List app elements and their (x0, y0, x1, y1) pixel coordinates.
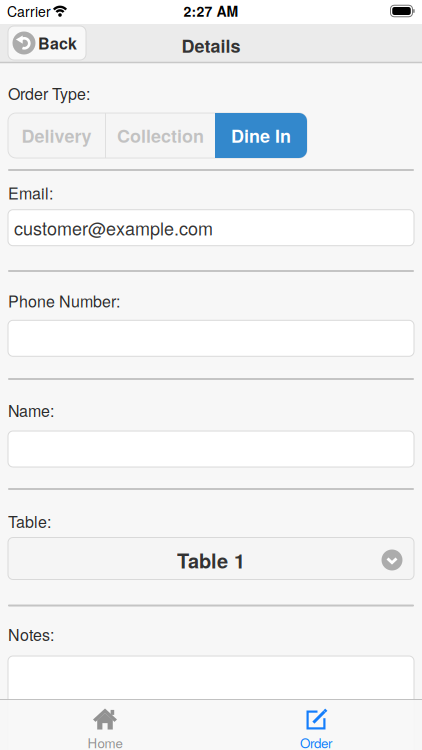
staticText: Delivery (21, 123, 91, 148)
staticText: 2:27 AM (183, 1, 238, 21)
button[interactable]: Home (55, 700, 155, 750)
staticText: Email: (8, 181, 53, 204)
staticText: Dine In (231, 123, 291, 148)
staticText: Details (181, 33, 240, 58)
staticText: Home (87, 733, 122, 750)
staticText: customer@example.com (14, 215, 213, 241)
button[interactable]: Delivery (8, 113, 105, 158)
staticText: Carrier (7, 1, 51, 21)
button[interactable]: Table 1 (8, 537, 414, 579)
staticText: Order Type: (8, 81, 90, 104)
staticText: Collection (117, 123, 204, 148)
button[interactable]: Collection (105, 113, 215, 158)
button[interactable]: Dine In (215, 113, 307, 158)
staticText: Back (38, 31, 77, 54)
staticText: Notes: (8, 622, 54, 645)
staticText: Name: (8, 398, 54, 421)
staticText: Table: (8, 509, 51, 532)
button[interactable]: Order (266, 700, 366, 750)
staticText: Table 1 (177, 546, 245, 574)
staticText: Phone Number: (8, 289, 120, 312)
staticText: Order (300, 733, 332, 750)
button[interactable]: Back (8, 26, 86, 60)
